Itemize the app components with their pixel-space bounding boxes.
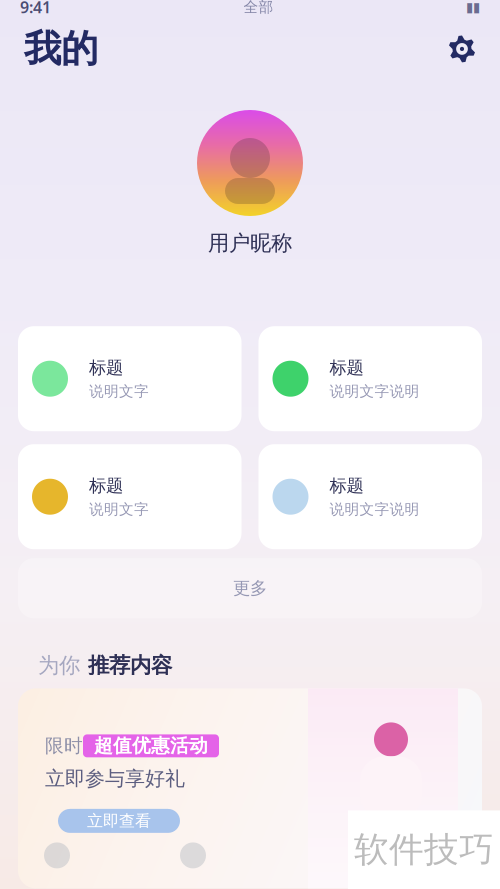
button[interactable]: 标题 [18,326,241,431]
button[interactable]: 限时 [18,688,482,888]
staticText: 超值优惠活动 [88,734,214,757]
staticText: 全部 [243,0,273,16]
staticText: ▮▮ [466,0,480,14]
staticText: 9:41 [20,0,51,18]
button[interactable]: 更多 [18,558,482,618]
button[interactable]: 标题 [258,444,482,549]
staticText: 软件技巧 [354,828,494,871]
staticText: 标题 [329,357,363,378]
staticText: 为你 [38,652,80,678]
staticText: 推荐内容 [88,652,172,678]
staticText: 我的 [24,26,98,72]
staticText: 限时 [45,734,83,757]
staticText: 标题 [89,475,123,496]
staticText: 用户昵称 [208,230,292,256]
button[interactable]: Settings [448,35,476,63]
staticText: 更多 [233,578,267,599]
staticText: 立即查看 [87,811,151,831]
staticText: 标题 [89,357,123,378]
staticText: 说明文字 [89,500,149,518]
staticText: 说明文字说明 [329,382,419,400]
button[interactable]: 标题 [258,326,482,431]
staticText: 立即参与享好礼 [45,766,185,791]
staticText: 说明文字 [89,382,149,400]
staticText: 标题 [329,475,363,496]
button[interactable]: 立即查看 [58,809,180,833]
staticText: 说明文字说明 [329,500,419,518]
button[interactable]: 标题 [18,444,241,549]
